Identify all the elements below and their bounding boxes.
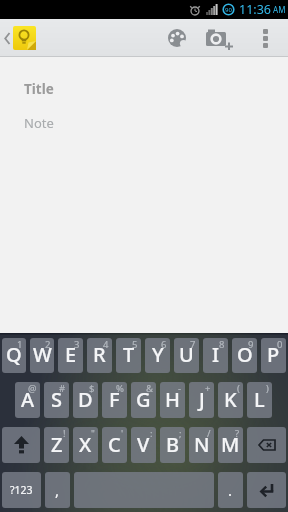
staticText: !	[63, 427, 66, 440]
staticText: 90	[225, 6, 232, 14]
staticText: M	[221, 431, 240, 458]
staticText: :	[150, 427, 153, 440]
staticText: P	[267, 341, 280, 368]
staticText: L	[254, 386, 265, 413]
staticText: C	[108, 431, 121, 458]
staticText: 8	[219, 338, 225, 351]
staticText: 3	[74, 338, 80, 351]
staticText: Title	[24, 80, 54, 98]
staticText: G	[136, 386, 151, 413]
staticText: Z	[51, 431, 63, 458]
staticText: U	[179, 341, 194, 368]
staticText: W	[33, 341, 52, 368]
staticText: H	[165, 386, 180, 413]
staticText: E	[65, 341, 77, 368]
staticText: 5	[132, 338, 138, 351]
staticText: /	[207, 427, 211, 440]
staticText: 7	[190, 338, 196, 351]
staticText: V	[137, 431, 150, 458]
staticText: 0	[277, 338, 283, 351]
staticText: T	[123, 341, 135, 368]
staticText: 6	[161, 338, 167, 351]
staticText: 11:36	[239, 1, 271, 18]
staticText: I	[212, 341, 220, 368]
staticText: %	[116, 382, 124, 395]
staticText: K	[224, 386, 237, 413]
staticText: Y	[152, 341, 164, 368]
staticText: A	[21, 386, 35, 413]
staticText: -	[178, 382, 182, 395]
staticText: &	[146, 382, 153, 395]
staticText: D	[78, 386, 93, 413]
staticText: AM	[271, 4, 286, 15]
staticText: @	[28, 382, 37, 395]
staticText: ?123	[10, 483, 33, 497]
staticText: Note	[24, 114, 54, 132]
staticText: "	[91, 427, 95, 440]
staticText: 9	[248, 338, 254, 351]
staticText: F	[109, 386, 120, 413]
staticText: N	[194, 431, 210, 458]
staticText: #	[59, 382, 66, 395]
staticText: 2	[45, 338, 51, 351]
staticText: .	[228, 480, 233, 500]
staticText: '	[121, 427, 124, 440]
staticText: R	[93, 341, 106, 368]
staticText: (	[237, 382, 240, 395]
staticText: $	[89, 382, 95, 395]
staticText: X	[79, 431, 92, 458]
staticText: B	[166, 431, 180, 458]
staticText: J	[199, 386, 205, 413]
staticText: O	[237, 341, 253, 368]
staticText: )	[266, 382, 269, 395]
staticText: ,	[55, 480, 60, 500]
staticText: S	[51, 386, 62, 413]
staticText: Q	[6, 341, 22, 368]
staticText: 4	[103, 338, 109, 351]
staticText: +	[205, 382, 211, 395]
staticText: 1	[17, 338, 23, 351]
staticText: ?	[235, 427, 240, 440]
staticText: ;	[179, 427, 182, 440]
